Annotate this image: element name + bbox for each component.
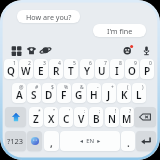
- staticText: V: [78, 112, 85, 126]
- staticText: D: [45, 88, 53, 102]
- staticText: ": [53, 108, 56, 115]
- button[interactable]: K: [117, 83, 131, 103]
- staticText: ◂ EN ▸: [80, 137, 101, 145]
- button[interactable]: B: [89, 107, 103, 127]
- button[interactable]: Q: [4, 59, 18, 79]
- staticText: ?: [129, 108, 132, 115]
- staticText: S: [31, 88, 37, 102]
- button[interactable]: Space: [60, 131, 120, 151]
- button[interactable]: Enter: [136, 131, 156, 151]
- staticText: 2: [28, 60, 31, 67]
- staticText: ): [142, 84, 144, 91]
- staticText: *: [38, 108, 41, 115]
- staticText: #: [35, 84, 39, 91]
- button[interactable]: Y: [80, 59, 94, 79]
- button[interactable]: Stickers: [24, 43, 38, 57]
- staticText: O: [128, 64, 136, 78]
- staticText: K: [121, 88, 128, 102]
- staticText: R: [53, 64, 60, 78]
- staticText: T: [68, 64, 74, 78]
- button[interactable]: Shift: [5, 107, 26, 127]
- button[interactable]: G: [72, 83, 86, 103]
- button[interactable]: T: [64, 59, 78, 79]
- button[interactable]: I'm fine: [93, 24, 146, 37]
- button[interactable]: Z: [29, 107, 43, 127]
- staticText: +: [111, 84, 114, 91]
- staticText: U: [98, 64, 106, 78]
- staticText: !: [115, 108, 117, 115]
- button[interactable]: Voice input: [139, 43, 153, 57]
- button[interactable]: How are you?: [17, 10, 80, 23]
- staticText: W: [21, 64, 31, 78]
- staticText: 9: [134, 60, 137, 67]
- staticText: Y: [84, 64, 91, 78]
- staticText: 6: [89, 60, 92, 67]
- button[interactable]: Backspace: [134, 107, 156, 127]
- staticText: G: [75, 88, 83, 102]
- staticText: ?123: [7, 136, 24, 146]
- button[interactable]: D: [42, 83, 56, 103]
- button[interactable]: S: [27, 83, 41, 103]
- staticText: J: [107, 88, 111, 102]
- staticText: F: [61, 88, 67, 102]
- staticText: C: [63, 112, 70, 126]
- staticText: @: [19, 84, 24, 91]
- staticText: L: [136, 88, 142, 102]
- staticText: ;: [99, 108, 101, 115]
- staticText: N: [108, 112, 116, 126]
- staticText: ': [69, 108, 71, 115]
- staticText: B: [93, 112, 100, 126]
- staticText: E: [38, 64, 44, 78]
- button[interactable]: I: [110, 59, 124, 79]
- button[interactable]: E: [34, 59, 48, 79]
- staticText: 5: [73, 60, 76, 67]
- staticText: 4: [58, 60, 61, 67]
- button[interactable]: ,: [44, 131, 59, 151]
- staticText: 7: [104, 60, 107, 67]
- button[interactable]: F: [57, 83, 71, 103]
- staticText: -: [97, 84, 99, 91]
- staticText: .: [127, 136, 130, 150]
- button[interactable]: W: [19, 59, 33, 79]
- button[interactable]: Themes: [38, 43, 52, 57]
- staticText: $: [51, 84, 54, 91]
- button[interactable]: ?123: [5, 131, 26, 151]
- button[interactable]: C: [59, 107, 73, 127]
- staticText: 8: [119, 60, 122, 67]
- staticText: 0: [149, 60, 152, 67]
- staticText: :: [84, 108, 86, 115]
- button[interactable]: .: [121, 131, 135, 151]
- staticText: I: [115, 64, 119, 78]
- staticText: M: [122, 112, 132, 126]
- button[interactable]: L: [132, 83, 146, 103]
- button[interactable]: Emoji: [121, 43, 135, 57]
- button[interactable]: R: [49, 59, 63, 79]
- staticText: X: [48, 112, 55, 126]
- staticText: A: [16, 88, 23, 102]
- button[interactable]: O: [125, 59, 139, 79]
- button[interactable]: Apps: [9, 43, 23, 57]
- staticText: (: [127, 84, 129, 91]
- button[interactable]: M: [120, 107, 134, 127]
- button[interactable]: H: [87, 83, 101, 103]
- staticText: Q: [7, 64, 15, 78]
- staticText: How are you?: [26, 12, 72, 22]
- button[interactable]: N: [105, 107, 119, 127]
- staticText: P: [144, 64, 151, 78]
- staticText: H: [90, 88, 98, 102]
- staticText: I'm fine: [107, 26, 133, 36]
- staticText: 3: [43, 60, 46, 67]
- staticText: &: [80, 84, 84, 91]
- button[interactable]: V: [74, 107, 88, 127]
- staticText: ,: [50, 136, 53, 150]
- staticText: Z: [33, 112, 39, 126]
- button[interactable]: X: [44, 107, 58, 127]
- button[interactable]: J: [102, 83, 116, 103]
- staticText: %: [64, 84, 69, 91]
- button[interactable]: P: [140, 59, 154, 79]
- button[interactable]: A: [12, 83, 26, 103]
- button[interactable]: U: [95, 59, 109, 79]
- staticText: 1: [13, 60, 16, 67]
- button[interactable]: Switch keyboard: [27, 131, 42, 151]
